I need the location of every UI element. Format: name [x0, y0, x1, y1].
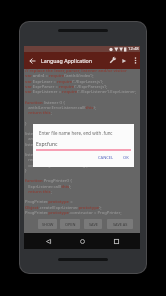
button[interactable]: Recents — [106, 233, 126, 249]
staticText: var antlr4 = require('antlr4/index'); — [25, 73, 94, 79]
staticText: return this; — [25, 110, 52, 116]
staticText: antlr4.error.ErrorListener.prototype); — [25, 136, 100, 142]
staticText: Object.create(ExprListener.prototype); — [25, 205, 102, 211]
staticText: ExprListener.call(this); — [25, 184, 72, 190]
staticText: antlr4.error.ErrorListener.call(this); — [25, 105, 96, 111]
staticText: return this; — [25, 189, 52, 195]
staticText: Enter file name here, end with .func — [39, 130, 113, 136]
button[interactable]: Run — [118, 52, 130, 69]
button[interactable]: Build — [106, 52, 118, 69]
staticText: ProgPrinter.prototype = — [25, 199, 73, 205]
button[interactable]: OPEN — [60, 219, 80, 229]
staticText: ProgPrinter.prototype.constructor = Prog… — [25, 210, 122, 216]
staticText: var ExprParser = require('./ExprParser.j… — [25, 84, 108, 90]
staticText: // replace the lexer, parser, listener a… — [25, 68, 141, 74]
button[interactable]: Home — [72, 233, 92, 249]
button[interactable]: SHOW — [38, 219, 57, 229]
button[interactable]: SAVE — [84, 219, 102, 229]
button[interactable]: Back — [38, 233, 58, 249]
staticText: function listener () { — [25, 100, 65, 106]
staticText: OK — [123, 155, 129, 160]
staticText: listener.prototype.constructor = listene… — [25, 142, 104, 148]
staticText: SHOW — [42, 222, 54, 227]
staticText: listener.prototype.syntaxError = functio… — [25, 152, 108, 158]
staticText: } — [25, 121, 27, 127]
staticText: } — [25, 168, 27, 174]
staticText: console.log("ERROR: " + msg); — [25, 163, 88, 169]
staticText: SAVE — [89, 222, 98, 227]
button[interactable]: OK — [121, 153, 131, 162]
button[interactable]: CANCEL — [96, 153, 116, 162]
staticText: OPEN — [65, 222, 76, 227]
staticText: listener.prototype = Object.create( — [25, 131, 93, 137]
staticText: var ExprListener = require('./ExprListen… — [25, 89, 137, 95]
staticText: Expr.func — [36, 141, 58, 148]
staticText: recognizer, offendingSymbol, line, colum… — [25, 157, 130, 163]
button[interactable]: Back — [24, 52, 41, 69]
button[interactable]: More options — [130, 52, 140, 69]
staticText: function ProgPrinter() { — [25, 178, 72, 184]
staticText: Languag Application — [41, 57, 93, 64]
staticText: var ExprLexer = require('./ExprLexer.js'… — [25, 79, 104, 85]
staticText: 12:48 — [128, 46, 139, 52]
button[interactable]: SAVE AS — [107, 219, 133, 229]
staticText: CANCEL — [98, 155, 114, 160]
staticText: SAVE AS — [113, 222, 128, 227]
